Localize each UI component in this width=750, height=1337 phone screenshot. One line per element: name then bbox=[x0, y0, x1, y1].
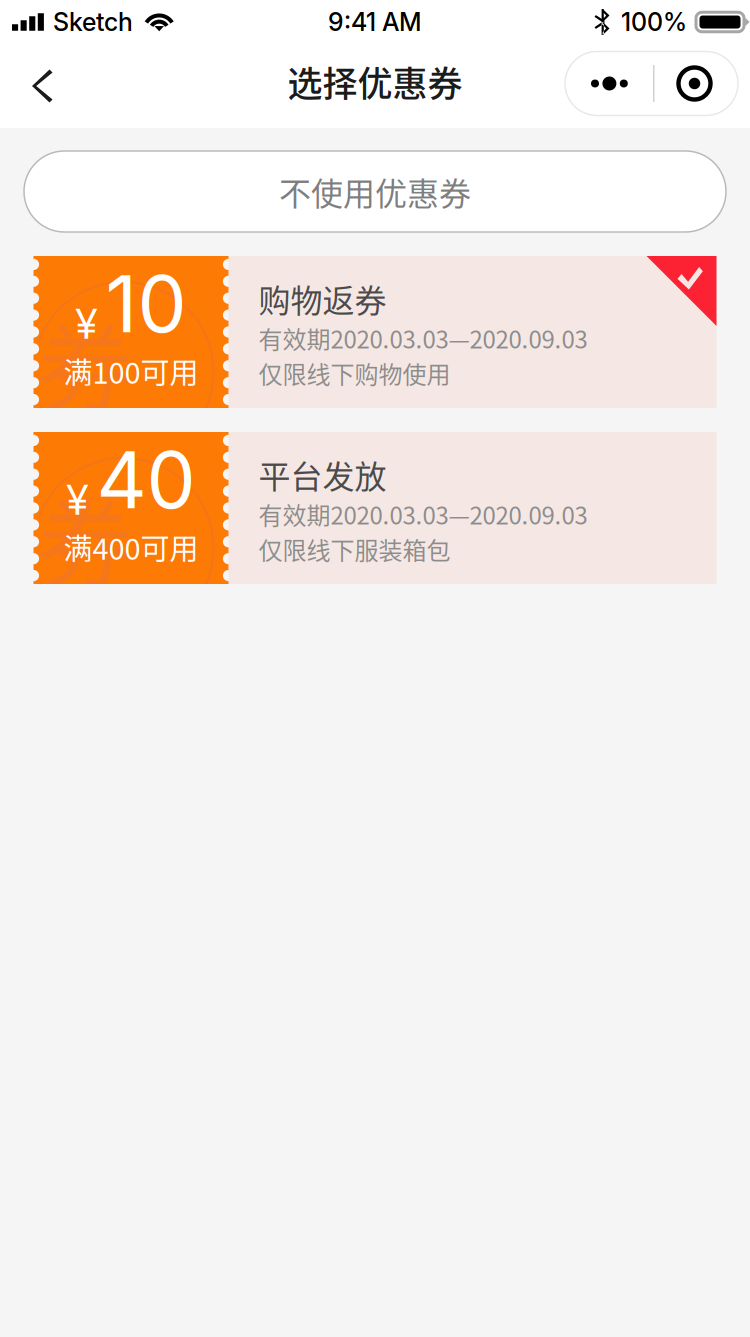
button[interactable]: 券 bbox=[33, 432, 716, 584]
staticText: 不使用优惠券 bbox=[279, 168, 471, 215]
staticText: 选择优惠券 bbox=[287, 56, 462, 107]
staticText: 平台发放 bbox=[258, 451, 386, 498]
staticText: 40 bbox=[96, 433, 195, 527]
staticText: 券 bbox=[37, 291, 133, 430]
staticText: 购物返券 bbox=[258, 275, 386, 322]
button[interactable]: 更多 bbox=[565, 51, 738, 115]
staticText: 满400可用 bbox=[63, 526, 198, 568]
staticText: 100% bbox=[621, 7, 687, 37]
staticText: ¥ bbox=[75, 298, 97, 349]
staticText: 9:41 AM bbox=[328, 7, 422, 37]
button[interactable]: 券 bbox=[33, 256, 716, 408]
staticText: ¥ bbox=[66, 474, 88, 525]
staticText: 有效期2020.03.03—2020.09.03 bbox=[258, 321, 587, 355]
staticText: 仅限线下购物使用 bbox=[258, 356, 450, 390]
button[interactable]: 不使用优惠券 bbox=[24, 151, 726, 232]
staticText: 10 bbox=[105, 257, 186, 351]
staticText: Sketch bbox=[53, 7, 133, 37]
staticText: 有效期2020.03.03—2020.09.03 bbox=[258, 497, 587, 531]
staticText: 满100可用 bbox=[63, 350, 198, 392]
button[interactable]: 返回 bbox=[0, 49, 78, 123]
staticText: 券 bbox=[37, 467, 133, 606]
staticText: 仅限线下服装箱包 bbox=[258, 532, 450, 566]
